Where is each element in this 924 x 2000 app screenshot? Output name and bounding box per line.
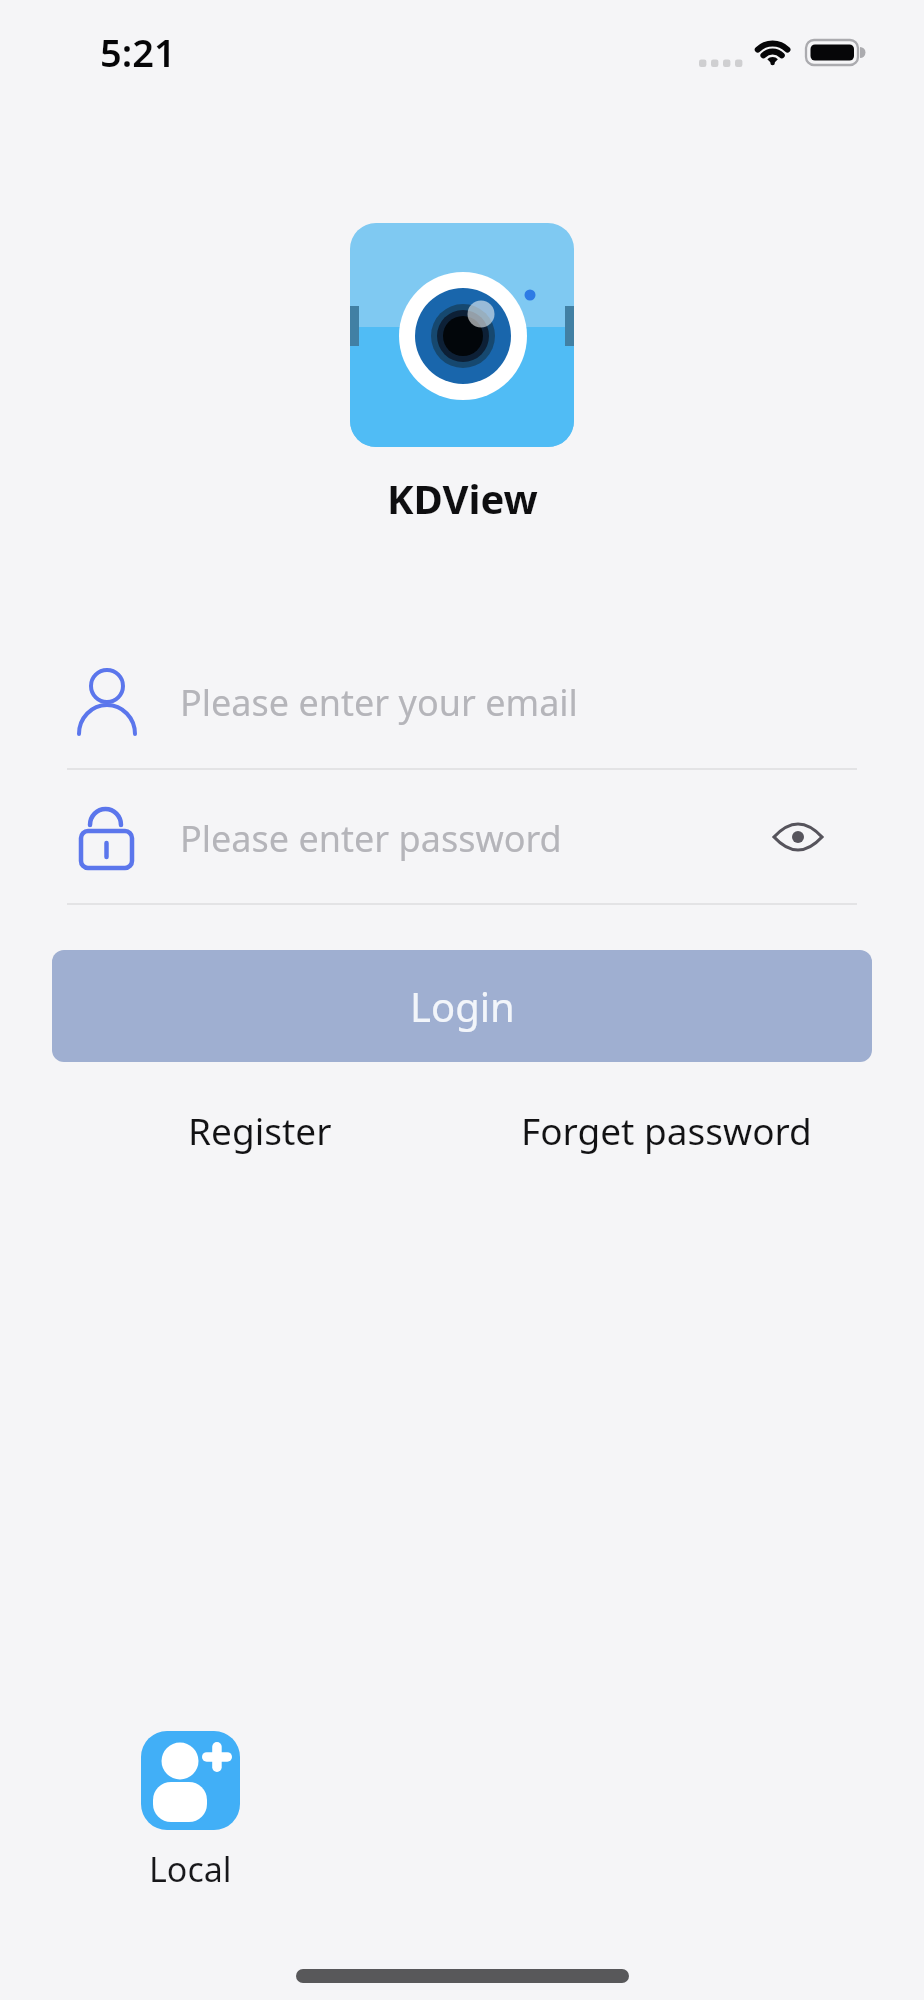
button[interactable] [141, 1731, 240, 1830]
staticText: Forget password [521, 1105, 812, 1155]
button[interactable]: Please enter password [52, 779, 872, 897]
staticText: Local [149, 1846, 232, 1892]
staticText: Please enter your email [180, 678, 578, 727]
button[interactable]: Local [130, 1846, 250, 1892]
staticText: Register [188, 1105, 332, 1155]
staticText: KDView [387, 471, 538, 525]
staticText: Please enter password [180, 814, 562, 863]
button[interactable]: Login [52, 950, 872, 1062]
staticText: Login [410, 979, 515, 1033]
button[interactable] [772, 815, 826, 859]
button[interactable]: Please enter your email [52, 643, 872, 761]
staticText: 5:21 [100, 26, 176, 78]
button[interactable]: Forget password [516, 1098, 816, 1162]
button[interactable]: Register [120, 1098, 400, 1162]
